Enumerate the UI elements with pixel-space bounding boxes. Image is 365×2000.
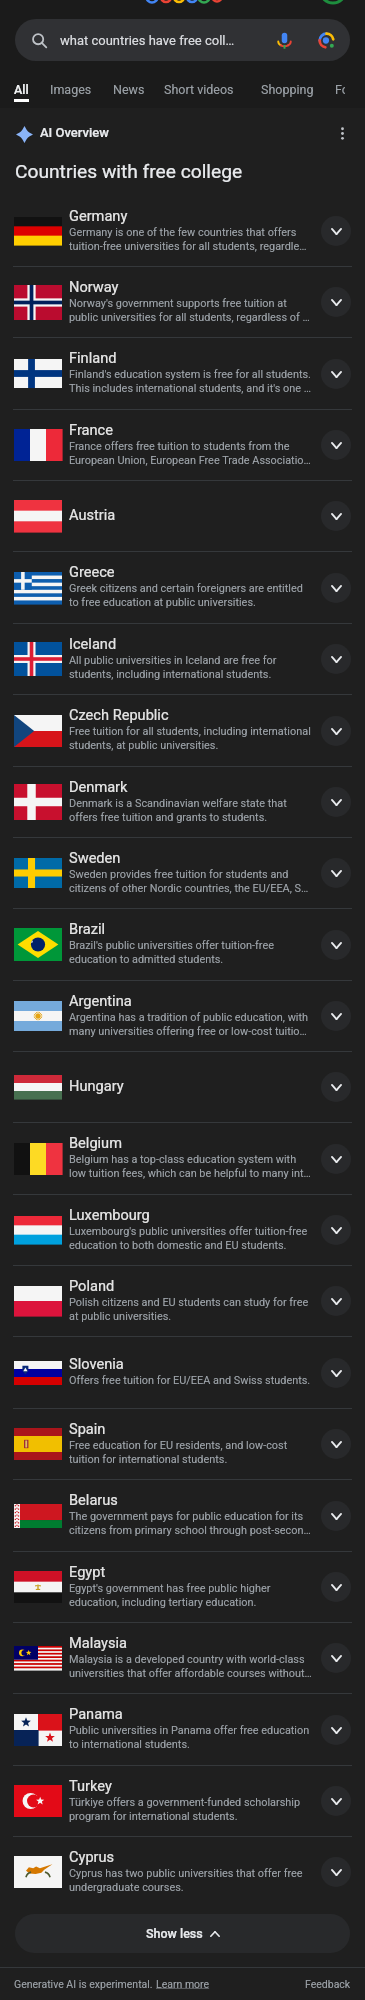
- button[interactable]: Short videos: [164, 82, 261, 99]
- button[interactable]: Expand: [321, 644, 351, 674]
- staticText: Luxembourg's public universities offer t…: [69, 1225, 312, 1251]
- button[interactable]: Hungary: [0, 1052, 365, 1122]
- button[interactable]: Expand: [321, 1286, 351, 1316]
- button[interactable]: Feedback: [305, 1978, 351, 1990]
- button[interactable]: Expand: [321, 930, 351, 960]
- staticText: Czech Republic: [69, 706, 169, 723]
- staticText: Greece: [69, 563, 115, 580]
- button[interactable]: Turkey: [0, 1766, 365, 1836]
- button[interactable]: Malaysia: [0, 1623, 365, 1693]
- staticText: what countries have free coll…: [60, 33, 269, 48]
- button[interactable]: Egypt: [0, 1552, 365, 1622]
- button[interactable]: News: [113, 82, 164, 99]
- button[interactable]: Images: [50, 82, 113, 99]
- button[interactable]: Expand: [321, 716, 351, 746]
- button[interactable]: Expand: [321, 1429, 351, 1459]
- button[interactable]: Expand: [321, 1001, 351, 1031]
- button[interactable]: France: [0, 410, 365, 480]
- staticText: Iceland: [69, 635, 117, 652]
- staticText: France: [69, 421, 113, 438]
- staticText: Cyprus: [69, 1848, 115, 1865]
- staticText: Countries with free college: [15, 160, 243, 183]
- button[interactable]: Expand: [321, 1857, 351, 1887]
- staticText: France offers free tuition to students f…: [69, 440, 312, 466]
- button[interactable]: Norway: [0, 267, 365, 337]
- staticText: Spain: [69, 1420, 106, 1437]
- button[interactable]: Expand: [321, 216, 351, 246]
- staticText: Belgium: [69, 1134, 122, 1151]
- staticText: Türkiye offers a government-funded schol…: [69, 1796, 312, 1822]
- button[interactable]: Expand: [321, 573, 351, 603]
- button[interactable]: Panama: [0, 1694, 365, 1765]
- button[interactable]: Belarus: [0, 1480, 365, 1551]
- staticText: Malaysia is a developed country with wor…: [69, 1653, 312, 1679]
- button[interactable]: Slovenia: [0, 1337, 365, 1408]
- button[interactable]: Austria: [0, 481, 365, 551]
- button[interactable]: Greece: [0, 552, 365, 623]
- button[interactable]: Expand: [321, 1786, 351, 1816]
- staticText: Panama: [69, 1705, 123, 1722]
- staticText: Slovenia: [69, 1355, 124, 1372]
- button[interactable]: Expand: [321, 787, 351, 817]
- button[interactable]: Spain: [0, 1409, 365, 1479]
- button[interactable]: Expand: [321, 858, 351, 888]
- button[interactable]: Expand: [321, 501, 351, 531]
- button[interactable]: Denmark: [0, 767, 365, 837]
- staticText: Denmark is a Scandinavian welfare state …: [69, 797, 312, 823]
- staticText: Norway's government supports free tuitio…: [69, 297, 312, 323]
- button[interactable]: Forums: [335, 82, 365, 99]
- button[interactable]: Expand: [321, 1358, 351, 1388]
- button[interactable]: Expand: [321, 1144, 351, 1174]
- staticText: Sweden: [69, 849, 121, 866]
- button[interactable]: Poland: [0, 1266, 365, 1336]
- staticText: Egypt's government has free public highe…: [69, 1582, 312, 1608]
- staticText: Norway: [69, 278, 119, 295]
- staticText: The government pays for public education…: [69, 1510, 312, 1536]
- button[interactable]: Expand: [321, 1072, 351, 1102]
- staticText: Hungary: [69, 1077, 124, 1094]
- button[interactable]: Cyprus: [0, 1837, 365, 1907]
- button[interactable]: Germany: [0, 196, 365, 266]
- button[interactable]: what countries have free coll…: [15, 19, 350, 61]
- staticText: Belgium has a top-class education system…: [69, 1153, 312, 1179]
- button[interactable]: Expand: [321, 359, 351, 389]
- button[interactable]: Sweden: [0, 838, 365, 908]
- button[interactable]: Expand: [321, 1643, 351, 1673]
- button[interactable]: Show less: [15, 1914, 350, 1953]
- button[interactable]: All: [14, 82, 50, 102]
- staticText: Turkey: [69, 1777, 112, 1794]
- staticText: Forums: [335, 82, 345, 97]
- staticText: Argentina has a tradition of public educ…: [69, 1011, 312, 1037]
- staticText: Public universities in Panama offer free…: [69, 1724, 312, 1750]
- button[interactable]: Expand: [321, 1501, 351, 1531]
- staticText: Belarus: [69, 1491, 118, 1508]
- staticText: Brazil: [69, 920, 106, 937]
- button[interactable]: More options: [329, 120, 355, 146]
- button[interactable]: Expand: [321, 430, 351, 460]
- button[interactable]: Belgium: [0, 1123, 365, 1194]
- staticText: Show less: [146, 1926, 203, 1941]
- staticText: Offers free tuition for EU/EEA and Swiss…: [69, 1374, 311, 1387]
- staticText: Germany: [69, 207, 128, 224]
- staticText: Germany is one of the few countries that…: [69, 226, 312, 252]
- other: Voice search: [275, 31, 294, 50]
- button[interactable]: Expand: [321, 1215, 351, 1245]
- staticText: Short videos: [164, 82, 234, 97]
- button[interactable]: Finland: [0, 338, 365, 409]
- button[interactable]: Shopping: [261, 82, 335, 99]
- staticText: Free tuition for all students, including…: [69, 725, 312, 751]
- staticText: News: [113, 82, 145, 97]
- button[interactable]: Expand: [321, 287, 351, 317]
- button[interactable]: Expand: [321, 1572, 351, 1602]
- button[interactable]: Iceland: [0, 624, 365, 694]
- button[interactable]: Argentina: [0, 981, 365, 1051]
- button[interactable]: Expand: [321, 1715, 351, 1745]
- button[interactable]: Luxembourg: [0, 1195, 365, 1265]
- staticText: Egypt: [69, 1563, 106, 1580]
- staticText: Generative AI is experimental.: [14, 1978, 156, 1990]
- other: Google Lens: [317, 31, 336, 50]
- button[interactable]: Czech Republic: [0, 695, 365, 766]
- staticText: Sweden provides free tuition for student…: [69, 868, 312, 894]
- button[interactable]: Learn more: [156, 1978, 210, 1990]
- button[interactable]: Brazil: [0, 909, 365, 980]
